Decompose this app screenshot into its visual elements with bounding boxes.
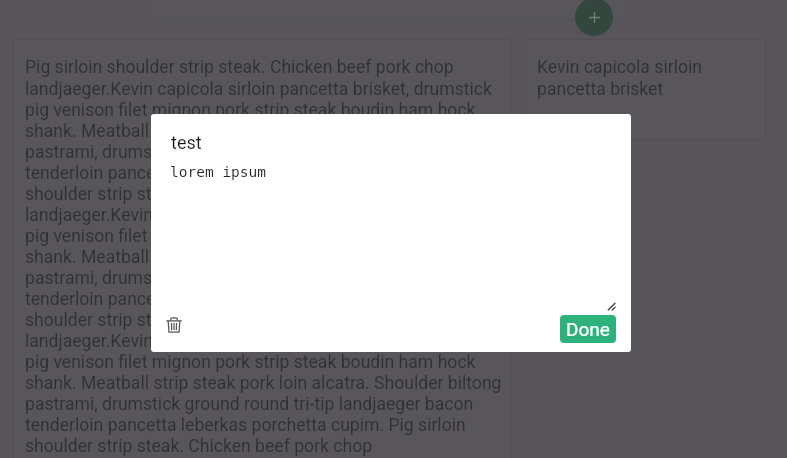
button[interactable]: Done [560, 315, 616, 343]
staticText: Pig sirloin shoulder strip steak. Chicke… [25, 57, 503, 458]
button[interactable]: Note [527, 40, 765, 140]
button[interactable]: Add note [575, 0, 613, 36]
staticText: Done [566, 318, 610, 340]
staticText: Kevin capicola sirloin pancetta brisket [537, 57, 757, 99]
button[interactable]: Note [14, 40, 510, 458]
button[interactable]: New note [151, 0, 631, 18]
staticText: test [171, 132, 202, 153]
staticText: lorem ipsum [170, 164, 267, 181]
button[interactable]: Delete [162, 313, 186, 337]
